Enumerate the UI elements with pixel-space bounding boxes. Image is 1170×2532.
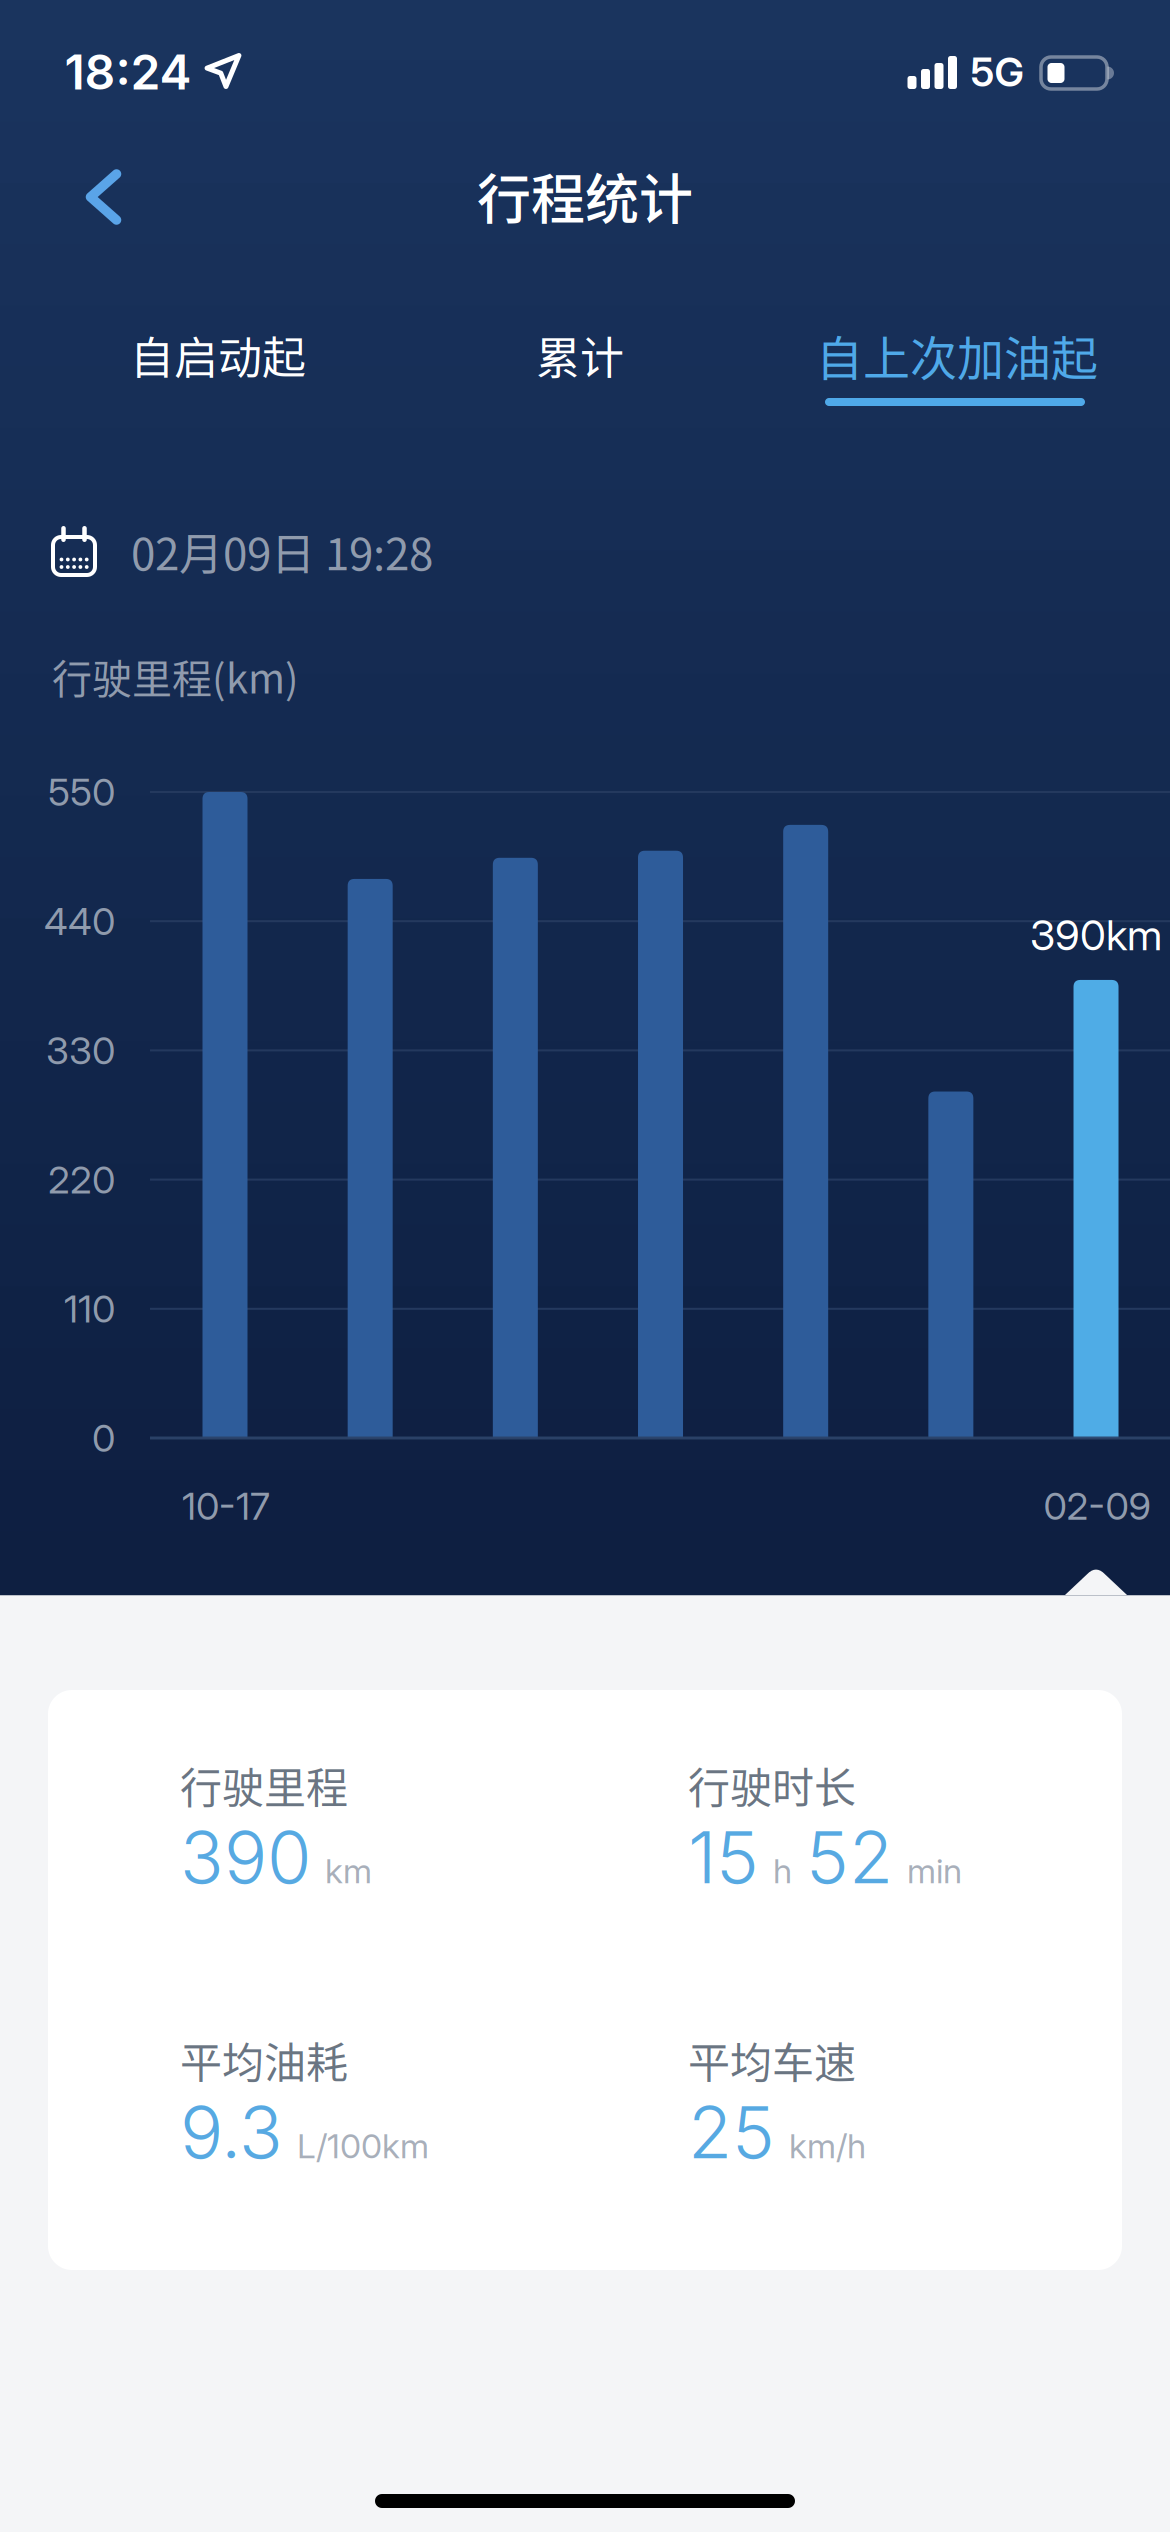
button[interactable]: Back [19,154,156,240]
staticText: 390km [1030,910,1162,960]
staticText: 02-09 [1043,1483,1150,1529]
staticText: 110 [64,1286,115,1332]
staticText: 9.3 [180,2088,283,2175]
staticText: 行驶里程(km) [52,647,299,705]
staticText: 自上次加油起 [816,321,1098,389]
staticText: 10-17 [182,1483,270,1529]
staticText: h [773,1850,792,1891]
staticText: 550 [48,769,115,815]
staticText: km [325,1850,372,1891]
staticText: 440 [44,898,115,944]
staticText: 5G [970,48,1023,96]
staticText: km/h [789,2125,866,2166]
staticText: 自启动起 [130,323,306,387]
staticText: 15 [688,1813,759,1900]
staticText: 行驶里程 [180,1755,348,1815]
staticText: min [907,1850,962,1891]
button[interactable]: 自启动起 [110,309,326,401]
staticText: L/100km [297,2125,429,2166]
staticText: 52 [806,1813,893,1900]
staticText: 220 [48,1157,115,1203]
staticText: 平均油耗 [180,2030,348,2090]
staticText: 330 [46,1027,115,1073]
staticText: 18:24 [64,43,191,101]
staticText: 02月09日 19:28 [131,519,433,583]
staticText: 行程统计 [477,157,693,235]
button[interactable]: 累计 [516,309,644,401]
staticText: 平均车速 [688,2030,856,2090]
button[interactable]: 自上次加油起 [796,307,1118,403]
staticText: 行驶时长 [688,1755,856,1815]
staticText: 0 [92,1415,115,1461]
staticText: 25 [688,2088,775,2175]
staticText: 累计 [536,323,624,387]
staticText: 390 [180,1813,311,1900]
